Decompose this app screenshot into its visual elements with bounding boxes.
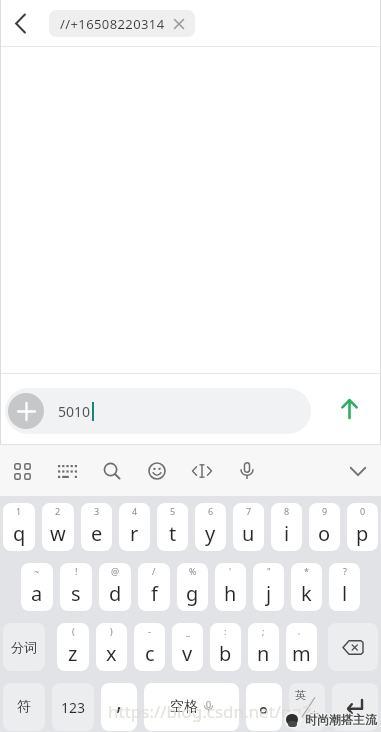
staticText: 时尚潮搭主流	[305, 711, 377, 726]
button[interactable]	[235, 459, 259, 483]
button[interactable]: 123	[52, 683, 94, 731]
button[interactable]	[145, 459, 169, 483]
staticText: :	[224, 625, 227, 637]
button[interactable]: 1	[3, 503, 35, 551]
staticText: *	[304, 565, 309, 577]
button[interactable]: 8	[271, 503, 302, 551]
staticText: h	[224, 580, 237, 607]
button[interactable]: 空格	[144, 683, 239, 731]
button[interactable]: 分词	[3, 623, 45, 671]
button[interactable]: ,	[101, 683, 137, 731]
staticText: q	[13, 520, 26, 547]
staticText: 2	[55, 505, 61, 517]
staticText: y	[205, 520, 216, 547]
button[interactable]	[246, 683, 282, 731]
button[interactable]: 2	[42, 503, 74, 551]
staticText: /	[152, 565, 156, 577]
button[interactable]: 4	[119, 503, 150, 551]
staticText: a	[31, 580, 43, 607]
staticText: e	[91, 520, 103, 547]
staticText: 时尚潮搭主流	[305, 713, 377, 728]
button[interactable]: 9	[309, 503, 340, 551]
staticText: 、	[297, 625, 306, 636]
staticText: t	[169, 520, 177, 547]
button[interactable]	[8, 393, 44, 429]
button[interactable]: @	[99, 563, 131, 611]
staticText: %	[189, 565, 197, 577]
button[interactable]: ?	[329, 563, 360, 611]
staticText: )	[110, 625, 113, 637]
button[interactable]: !	[60, 563, 92, 611]
button[interactable]	[55, 459, 79, 483]
button[interactable]: /	[138, 563, 170, 611]
staticText: m	[292, 640, 311, 667]
staticText: b	[219, 640, 232, 667]
staticText: ;	[262, 625, 265, 637]
staticText: !	[75, 565, 78, 577]
staticText: @	[111, 565, 120, 577]
button[interactable]: //+16508220314	[49, 10, 195, 37]
button[interactable]: 3	[81, 503, 112, 551]
button[interactable]	[0, 3, 40, 43]
button[interactable]: )	[96, 623, 127, 671]
button[interactable]: 6	[195, 503, 226, 551]
staticText: g	[186, 580, 199, 607]
staticText: f	[151, 580, 158, 607]
staticText: o	[318, 520, 331, 547]
button[interactable]	[331, 391, 367, 427]
staticText: ~	[34, 565, 40, 577]
button[interactable]: 5010	[5, 388, 311, 434]
button[interactable]: 英	[289, 683, 325, 731]
button[interactable]: ~	[21, 563, 53, 611]
staticText: c	[145, 640, 155, 667]
staticText: v	[182, 640, 193, 667]
staticText: k	[301, 580, 312, 607]
button[interactable]: "	[253, 563, 284, 611]
staticText: 123	[61, 698, 86, 717]
button[interactable]: ;	[248, 623, 279, 671]
staticText: x	[106, 640, 117, 667]
staticText: ?	[343, 565, 347, 577]
button[interactable]	[332, 683, 378, 731]
staticText: p	[356, 520, 369, 547]
button[interactable]: '	[215, 563, 246, 611]
staticText: 7	[246, 505, 252, 517]
button[interactable]: :	[210, 623, 241, 671]
staticText: 9	[322, 505, 328, 517]
staticText: //+16508220314	[60, 15, 165, 33]
staticText: 英	[295, 688, 306, 702]
button[interactable]	[190, 459, 214, 483]
button[interactable]	[328, 623, 378, 671]
staticText: 5	[170, 505, 176, 517]
button[interactable]	[346, 459, 370, 483]
button[interactable]: (	[57, 623, 89, 671]
staticText: 4	[132, 505, 138, 517]
staticText: w	[50, 520, 66, 547]
staticText: 8	[284, 505, 290, 517]
staticText: 符	[17, 698, 31, 716]
button[interactable]: 符	[3, 683, 45, 731]
button[interactable]: 、	[286, 623, 317, 671]
button[interactable]: 5	[157, 503, 188, 551]
button[interactable]: 7	[233, 503, 264, 551]
button[interactable]: 0	[347, 503, 378, 551]
staticText: 5010	[58, 402, 91, 421]
staticText: n	[257, 640, 270, 667]
staticText: (	[72, 625, 75, 637]
staticText: 3	[94, 505, 100, 517]
button[interactable]: -	[134, 623, 165, 671]
staticText: r	[130, 520, 139, 547]
button[interactable]	[100, 459, 124, 483]
staticText: ,	[116, 685, 123, 716]
button[interactable]: _	[172, 623, 203, 671]
button[interactable]: %	[177, 563, 208, 611]
staticText: _	[186, 625, 190, 637]
staticText: -	[148, 625, 151, 637]
staticText: u	[242, 520, 255, 547]
staticText: https://blog.csdn.net/qq2	[108, 700, 312, 723]
button[interactable]: *	[291, 563, 322, 611]
staticText: 分词	[11, 639, 37, 655]
staticText: z	[68, 640, 78, 667]
button[interactable]	[10, 459, 34, 483]
staticText: 中	[309, 709, 320, 723]
